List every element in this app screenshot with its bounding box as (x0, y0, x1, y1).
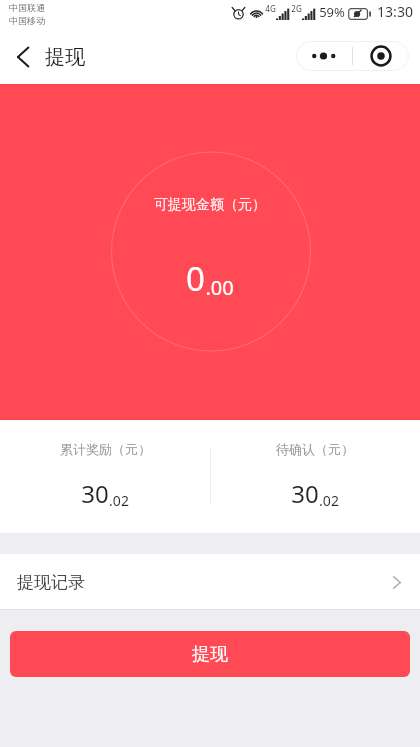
button[interactable]: 提现记录 (0, 554, 420, 610)
staticText: 13:30 (377, 2, 413, 21)
staticText: 30 (291, 477, 319, 510)
staticText: 提现记录 (17, 572, 85, 593)
staticText: 可提现金额（元） (154, 196, 266, 214)
staticText: 中国联通 (9, 2, 45, 13)
staticText: 待确认（元） (276, 441, 354, 457)
staticText: 30 (81, 477, 109, 510)
staticText: .02 (319, 491, 339, 510)
staticText: 4G (265, 3, 276, 14)
button[interactable]: 提现 (10, 631, 410, 677)
staticText: 2G (291, 3, 302, 14)
staticText: 提现 (45, 45, 85, 70)
button[interactable]: More (296, 41, 352, 71)
staticText: 59% (319, 3, 345, 21)
staticText: 0 (186, 256, 205, 301)
staticText: .00 (205, 274, 234, 301)
button[interactable]: Back (6, 40, 40, 74)
button[interactable]: Close (353, 41, 409, 71)
staticText: .02 (109, 491, 129, 510)
staticText: 中国移动 (9, 15, 45, 26)
staticText: 提现 (192, 643, 228, 666)
staticText: 累计奖励（元） (60, 441, 151, 457)
